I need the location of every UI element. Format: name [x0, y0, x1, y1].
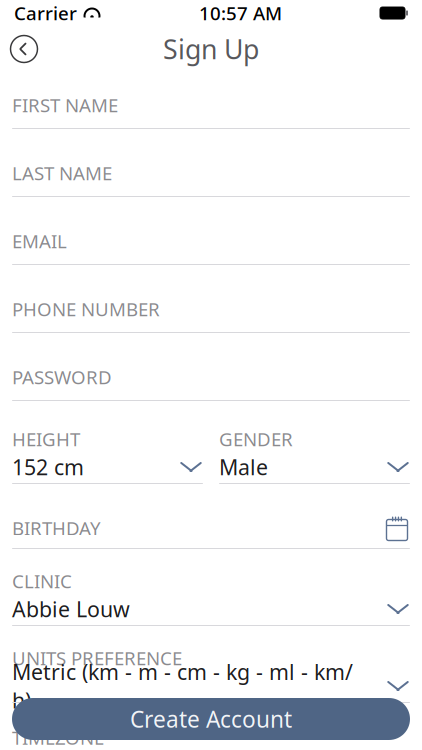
button[interactable]: BIRTHDAY [12, 514, 410, 549]
button[interactable]: PASSWORD [12, 366, 410, 401]
button[interactable]: GENDER [219, 429, 410, 484]
button[interactable]: CLINIC [12, 571, 410, 626]
staticText: LAST NAME [12, 161, 112, 185]
staticText: Abbie Louw [12, 595, 130, 623]
button[interactable]: FIRST NAME [12, 94, 410, 129]
button[interactable]: EMAIL [12, 230, 410, 265]
staticText: Sign Up [163, 31, 259, 67]
staticText: HEIGHT [12, 427, 80, 451]
staticText: TIMEZONE [12, 725, 104, 750]
staticText: GENDER [219, 427, 293, 451]
button[interactable]: Create Account [12, 698, 410, 740]
button[interactable]: Back [4, 29, 44, 69]
button[interactable]: HEIGHT [12, 429, 203, 484]
staticText: FIRST NAME [12, 93, 118, 117]
staticText: BIRTHDAY [12, 516, 101, 540]
staticText: Carrier [14, 1, 77, 25]
staticText: Metric (km - m - cm - kg - ml - km/h) [12, 658, 353, 714]
staticText: Create Account [130, 704, 292, 734]
staticText: PASSWORD [12, 365, 112, 389]
staticText: PHONE NUMBER [12, 297, 160, 321]
staticText: Male [219, 453, 268, 481]
button[interactable]: LAST NAME [12, 162, 410, 197]
staticText: 152 cm [12, 453, 84, 481]
staticText: 10:57 AM [199, 1, 282, 25]
staticText: CLINIC [12, 569, 72, 593]
staticText: UNITS PREFERENCE [12, 646, 182, 670]
button[interactable]: UNITS PREFERENCE [12, 648, 410, 703]
staticText: EMAIL [12, 229, 67, 253]
button[interactable]: PHONE NUMBER [12, 298, 410, 333]
